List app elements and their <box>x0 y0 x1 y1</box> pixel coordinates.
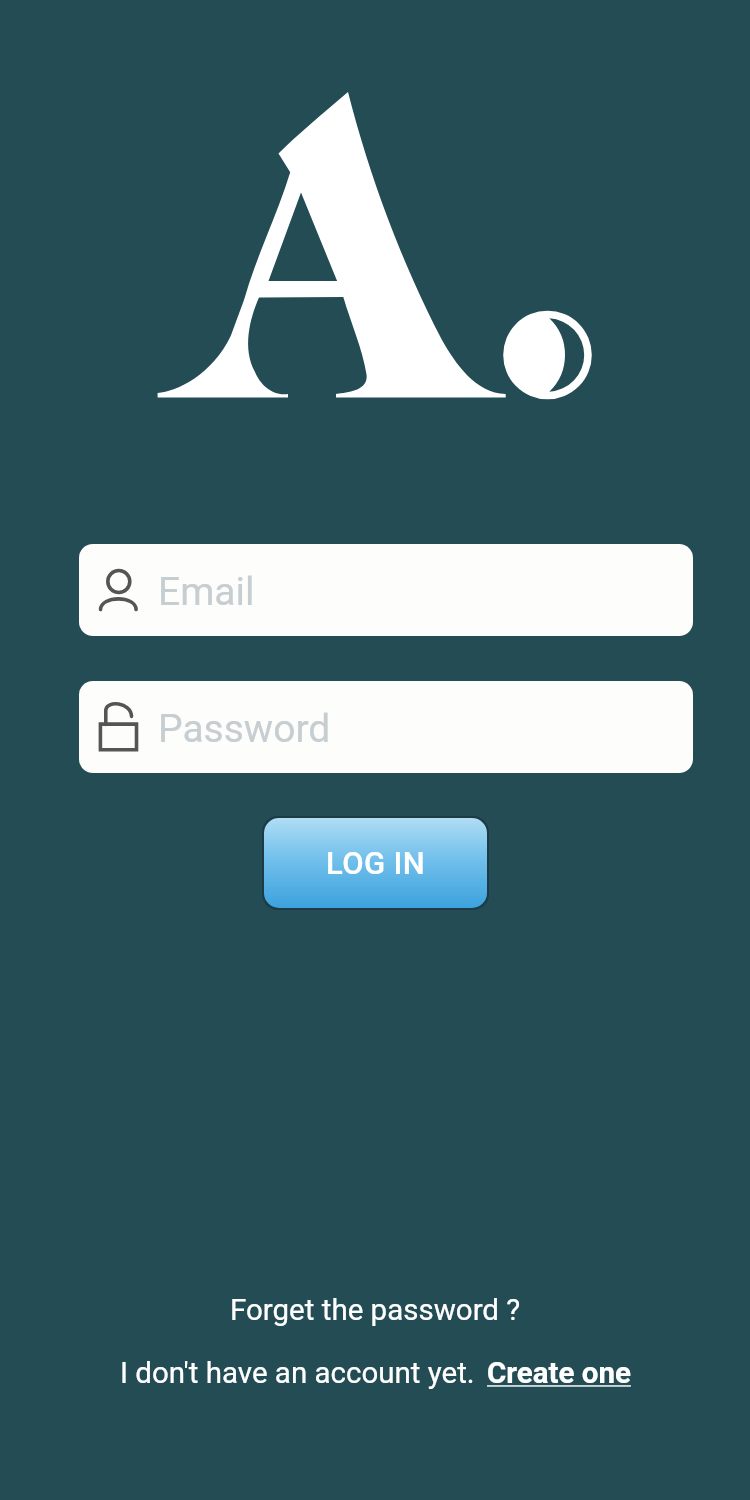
button[interactable]: Forget the password ? <box>230 1293 521 1328</box>
staticText: Password <box>158 706 331 752</box>
staticText: Email <box>158 569 255 615</box>
staticText: Create one <box>487 1356 631 1391</box>
other: Password icon <box>97 699 143 751</box>
button[interactable]: Email icon <box>79 544 693 636</box>
button[interactable]: Create one <box>487 1356 631 1391</box>
button[interactable]: LOG IN <box>264 818 487 908</box>
button[interactable]: Password icon <box>79 681 693 773</box>
staticText: Forget the password ? <box>230 1293 521 1328</box>
staticText: I don't have an account yet. <box>120 1356 475 1391</box>
staticText: LOG IN <box>326 845 426 881</box>
other: Email icon <box>97 562 143 614</box>
